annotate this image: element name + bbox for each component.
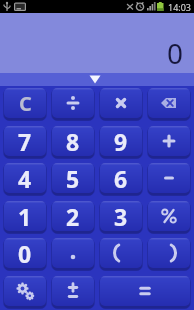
button[interactable]: 3 [100, 201, 142, 231]
button[interactable]: 9 [100, 126, 142, 156]
staticText: 0 [167, 34, 184, 72]
button[interactable] [52, 88, 94, 118]
staticText: 4 [18, 163, 32, 193]
button[interactable]: 8 [52, 126, 94, 156]
staticText: 8 [66, 126, 80, 156]
button[interactable] [0, 73, 194, 86]
staticText: C [19, 90, 32, 117]
staticText: 14:03 [168, 1, 192, 13]
staticText: 3 [114, 201, 128, 231]
button[interactable]: 7 [4, 126, 46, 156]
button[interactable]: 5 [52, 163, 94, 193]
button[interactable]: C [4, 88, 46, 118]
staticText: 5 [66, 163, 80, 193]
button[interactable]: 2 [52, 201, 94, 231]
button[interactable] [100, 88, 142, 118]
button[interactable] [52, 238, 94, 268]
button[interactable] [148, 201, 190, 231]
staticText: 6 [114, 163, 128, 193]
button[interactable] [4, 276, 46, 306]
button[interactable]: 1 [4, 201, 46, 231]
staticText: 1 [18, 201, 32, 231]
button[interactable] [148, 163, 190, 193]
button[interactable]: 0 [4, 238, 46, 268]
button[interactable] [148, 238, 190, 268]
button[interactable]: 6 [100, 163, 142, 193]
staticText: 2 [66, 201, 80, 231]
button[interactable] [100, 238, 142, 268]
staticText: 7 [18, 126, 32, 156]
staticText: 0 [18, 238, 32, 268]
button[interactable]: 4 [4, 163, 46, 193]
staticText: 9 [114, 126, 128, 156]
button[interactable] [148, 88, 190, 118]
button[interactable] [148, 126, 190, 156]
button[interactable] [100, 276, 190, 306]
button[interactable] [52, 276, 94, 306]
